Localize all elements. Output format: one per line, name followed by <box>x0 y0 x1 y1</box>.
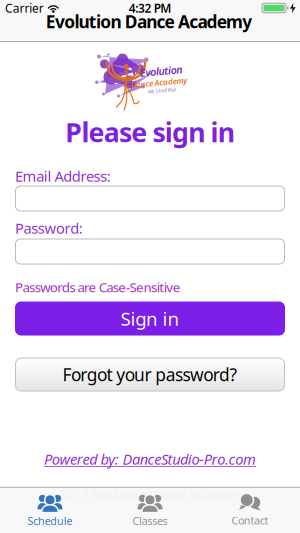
staticText: Schedule <box>27 514 72 528</box>
staticText: We Shall Rise <box>147 87 176 94</box>
staticText: Password: <box>15 218 83 238</box>
button[interactable]: Contact <box>200 488 300 533</box>
staticText: Evolution <box>140 64 182 78</box>
button[interactable]: Forgot your password? <box>15 357 285 391</box>
button[interactable]: Schedule <box>0 488 100 533</box>
staticText: Evolution Dance Academy <box>46 10 252 33</box>
button[interactable]: Sign in <box>15 301 285 335</box>
staticText: 2017 Evolution Dance Academy <box>58 485 244 503</box>
staticText: Sign in <box>121 306 179 331</box>
staticText: Classes <box>132 514 168 528</box>
staticText: Dance Academy <box>131 77 187 88</box>
staticText: Forgot your password? <box>62 363 237 386</box>
button[interactable]: Powered by: DanceStudio-Pro.com <box>15 449 285 469</box>
staticText: Email Address: <box>15 166 111 186</box>
staticText: Passwords are Case-Sensitive <box>15 278 181 296</box>
button[interactable]: Classes <box>100 488 200 533</box>
staticText: 4:32 PM <box>129 0 171 16</box>
staticText: Carrier <box>5 0 44 16</box>
staticText: Contact <box>231 513 269 527</box>
staticText: Please sign in <box>65 114 235 150</box>
staticText: Powered by: DanceStudio-Pro.com <box>44 449 256 469</box>
